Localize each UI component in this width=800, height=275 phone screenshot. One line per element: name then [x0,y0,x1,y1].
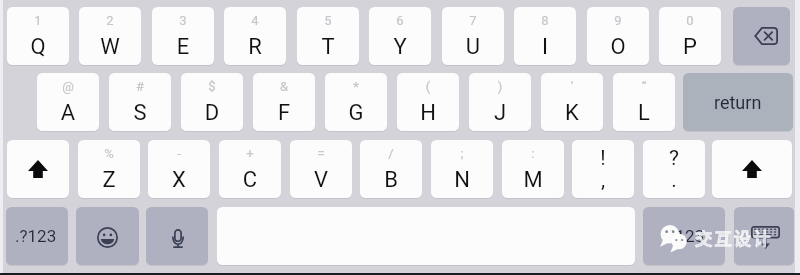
button[interactable]: : [502,140,564,198]
button[interactable]: 7 [442,7,504,65]
staticText: E [152,34,214,60]
staticText: G [325,100,387,126]
button[interactable]: = [290,140,352,198]
button[interactable]: 3 [152,7,214,65]
staticText: R [224,34,286,60]
staticText: . [643,168,705,192]
staticText: Q [7,34,69,60]
button[interactable]: + [219,140,281,198]
button[interactable]: return [683,73,793,131]
staticText: return [714,92,762,113]
staticText: Y [369,34,431,60]
staticText: W [79,34,141,60]
staticText: , [572,168,634,192]
staticText: 8 [514,13,576,29]
staticText: 交互设计 [695,225,773,250]
staticText: C [219,167,281,193]
staticText: L [613,100,675,126]
staticText: 0 [659,13,721,29]
staticText: “ [613,79,675,95]
button[interactable]: Shift [7,140,69,198]
staticText: 2 [79,13,141,29]
staticText: H [397,100,459,126]
button[interactable]: Hide keyboard [734,207,794,265]
button[interactable]: 0 [659,7,721,65]
staticText: F [253,100,315,126]
staticText: B [360,167,422,193]
button[interactable]: 4 [224,7,286,65]
staticText: 4 [224,13,286,29]
staticText: 9 [587,13,649,29]
staticText: 7 [442,13,504,29]
staticText: = [290,146,352,162]
button[interactable]: # [109,73,171,131]
staticText: M [502,167,564,193]
staticText: V [290,167,352,193]
button[interactable]: ; [431,140,493,198]
button[interactable]: 8 [514,7,576,65]
button[interactable]: $ [181,73,243,131]
staticText: $ [181,79,243,95]
staticText: .?123 [15,226,57,246]
button[interactable]: ) [469,73,531,131]
staticText: A [37,100,99,126]
button[interactable]: “ [613,73,675,131]
staticText: K [541,100,603,126]
staticText: 5 [297,13,359,29]
staticText: 1 [7,13,69,29]
button[interactable]: @ [37,73,99,131]
staticText: J [469,100,531,126]
staticText: Z [78,167,140,193]
staticText: @ [37,79,99,95]
staticText: U [442,34,504,60]
button[interactable]: ! [572,140,634,198]
staticText: ; [431,146,493,162]
staticText: X [148,167,210,193]
button[interactable]: Backspace [733,7,790,65]
staticText: S [109,100,171,126]
button[interactable]: ' [541,73,603,131]
staticText: * [325,79,387,95]
button[interactable]: * [325,73,387,131]
staticText: # [109,79,171,95]
button[interactable]: .?123 [6,207,68,265]
button[interactable]: 6 [369,7,431,65]
button[interactable]: Shift [712,140,792,198]
button[interactable]: 5 [297,7,359,65]
button[interactable]: ( [397,73,459,131]
button[interactable]: & [253,73,315,131]
staticText: ? [643,146,705,170]
button[interactable]: 9 [587,7,649,65]
button[interactable]: ? [643,140,705,198]
button[interactable]: / [360,140,422,198]
staticText: P [659,34,721,60]
button[interactable]: - [148,140,210,198]
staticText: D [181,100,243,126]
staticText: ( [397,79,459,95]
button[interactable]: 1 [7,7,69,65]
button[interactable]: 2 [79,7,141,65]
staticText: / [360,146,422,162]
button[interactable]: % [78,140,140,198]
staticText: ! [572,146,634,170]
staticText: .?123 [663,226,705,246]
staticText: O [587,34,649,60]
staticText: 3 [152,13,214,29]
button[interactable]: Dictation [146,207,208,265]
staticText: T [297,34,359,60]
staticText: I [514,34,576,60]
staticText: ) [469,79,531,95]
staticText: % [78,146,140,162]
staticText: + [219,146,281,162]
button[interactable]: Emoji [76,207,139,265]
staticText: N [431,167,493,193]
button[interactable]: .?123 [643,207,725,265]
staticText: & [253,79,315,95]
staticText: 6 [369,13,431,29]
